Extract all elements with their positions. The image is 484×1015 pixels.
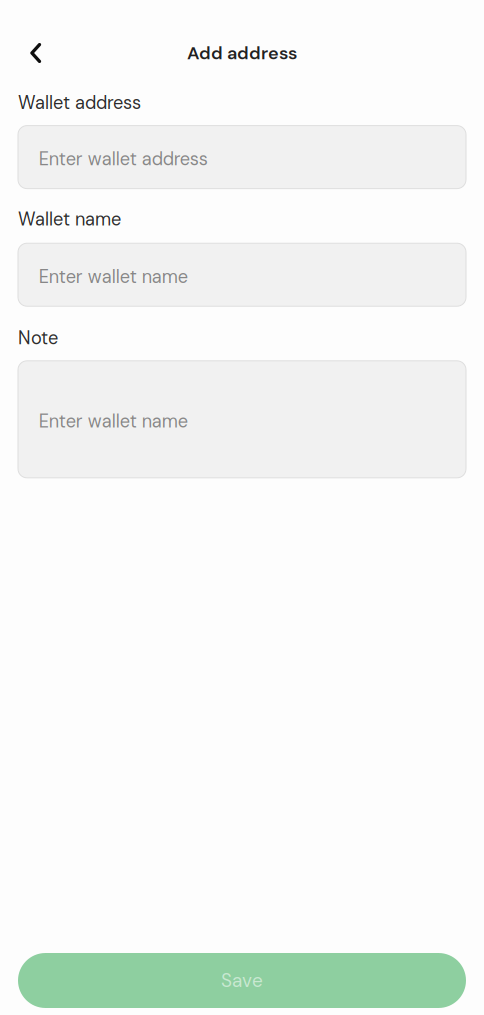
staticText: Wallet name bbox=[18, 208, 121, 231]
staticText: Enter wallet name bbox=[39, 409, 188, 433]
button[interactable]: Back bbox=[18, 32, 53, 74]
staticText: Wallet address bbox=[18, 91, 141, 115]
button[interactable]: Enter wallet name bbox=[18, 361, 466, 478]
staticText: Enter wallet name bbox=[39, 265, 188, 288]
staticText: Enter wallet address bbox=[39, 147, 208, 171]
button[interactable]: Enter wallet address bbox=[18, 126, 466, 189]
staticText: Note bbox=[18, 326, 58, 350]
staticText: Add address bbox=[187, 41, 297, 65]
button[interactable]: Enter wallet name bbox=[18, 243, 466, 306]
button[interactable]: Save bbox=[18, 953, 466, 1008]
staticText: Save bbox=[221, 968, 263, 993]
